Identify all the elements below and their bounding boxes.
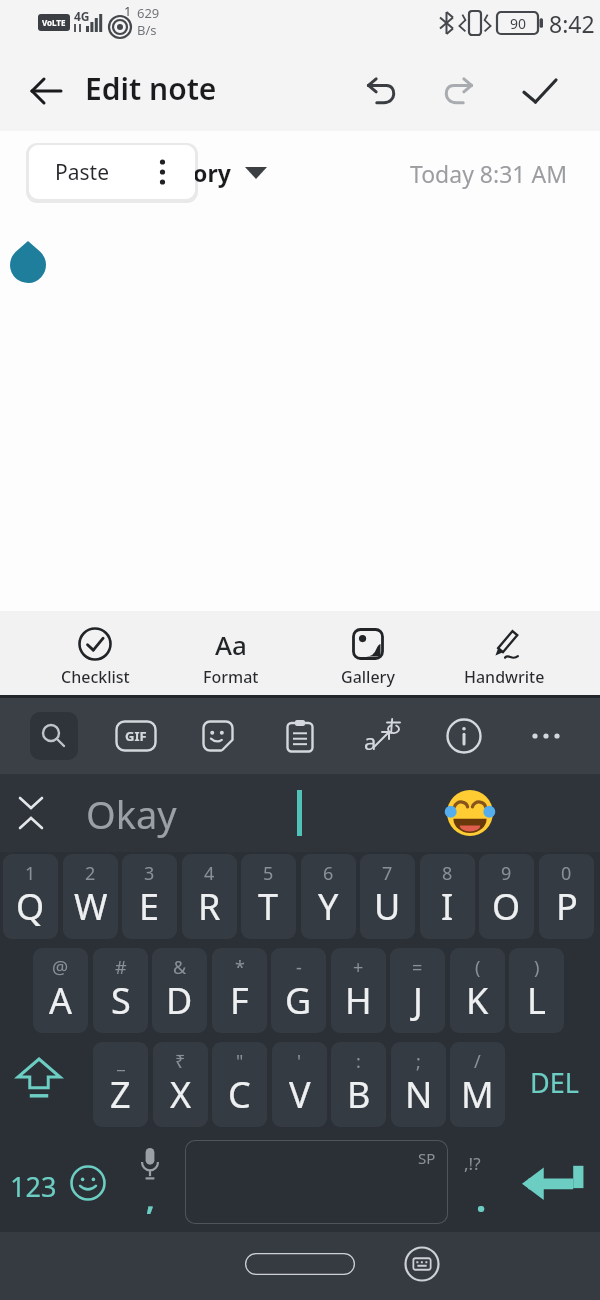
- button[interactable]: SP: [185, 1140, 448, 1224]
- button[interactable]: *: [212, 948, 267, 1033]
- button[interactable]: DEL: [530, 1064, 579, 1101]
- button[interactable]: (: [450, 948, 505, 1033]
- button[interactable]: GIF: [95, 698, 177, 774]
- staticText: P: [556, 882, 578, 931]
- staticText: N: [405, 1070, 433, 1119]
- staticText: F: [230, 976, 249, 1025]
- staticText: =: [412, 955, 423, 980]
- button[interactable]: ): [509, 948, 564, 1033]
- staticText: _: [117, 1049, 125, 1074]
- button[interactable]: -: [271, 948, 326, 1033]
- button[interactable]: 5: [241, 854, 296, 939]
- button[interactable]: [18, 1059, 60, 1099]
- button[interactable]: 123: [10, 1168, 57, 1205]
- button[interactable]: 4: [182, 854, 237, 939]
- button[interactable]: +: [331, 948, 386, 1033]
- button[interactable]: Handwrite: [436, 611, 573, 695]
- button[interactable]: _: [93, 1042, 148, 1127]
- staticText: +: [353, 955, 364, 980]
- staticText: 5: [263, 861, 274, 886]
- staticText: X: [170, 1070, 192, 1119]
- staticText: VoLTE: [42, 17, 66, 28]
- staticText: Handwrite: [464, 666, 545, 688]
- staticText: 6: [323, 861, 334, 886]
- button[interactable]: [70, 1165, 106, 1201]
- button[interactable]: &: [152, 948, 207, 1033]
- staticText: 629: [137, 4, 160, 22]
- staticText: S: [111, 976, 131, 1025]
- button[interactable]: [447, 790, 493, 836]
- staticText: 8: [442, 861, 453, 886]
- staticText: L: [527, 976, 546, 1025]
- button[interactable]: [404, 1246, 440, 1282]
- button[interactable]: Paste: [29, 145, 195, 199]
- button[interactable]: 2: [63, 854, 118, 939]
- staticText: Edit note: [85, 68, 217, 109]
- staticText: G: [285, 976, 312, 1025]
- staticText: B/s: [137, 21, 157, 39]
- staticText: a: [364, 726, 377, 756]
- button[interactable]: [18, 796, 44, 830]
- button[interactable]: [13, 698, 95, 774]
- staticText: U: [374, 882, 401, 931]
- button[interactable]: Checklist: [27, 611, 163, 695]
- button[interactable]: /: [450, 1042, 505, 1127]
- staticText: #: [115, 955, 127, 980]
- staticText: 7: [382, 861, 393, 886]
- button[interactable]: 3: [122, 854, 177, 939]
- button[interactable]: Aa: [163, 611, 299, 695]
- button[interactable]: ₹: [153, 1042, 208, 1127]
- button[interactable]: [364, 77, 396, 105]
- staticText: Y: [318, 882, 339, 931]
- button[interactable]: [423, 698, 505, 774]
- button[interactable]: [444, 77, 476, 105]
- button[interactable]: 6: [301, 854, 356, 939]
- staticText: ': [297, 1049, 302, 1074]
- staticText: R: [198, 882, 221, 931]
- button[interactable]: Okay: [86, 788, 177, 840]
- button[interactable]: [245, 1253, 355, 1275]
- button[interactable]: [177, 698, 259, 774]
- button[interactable]: #: [93, 948, 148, 1033]
- staticText: I: [441, 882, 454, 931]
- staticText: Q: [16, 882, 45, 931]
- button[interactable]: [522, 1164, 586, 1200]
- button[interactable]: [259, 698, 341, 774]
- button[interactable]: Gallery: [299, 611, 436, 695]
- button[interactable]: ': [272, 1042, 327, 1127]
- staticText: Today 8:31 AM: [410, 158, 568, 189]
- button[interactable]: 7: [360, 854, 415, 939]
- button[interactable]: ;: [391, 1042, 446, 1127]
- staticText: ,!?: [464, 1152, 481, 1175]
- button[interactable]: 0: [539, 854, 594, 939]
- staticText: ₹: [175, 1049, 186, 1074]
- button[interactable]: [32, 78, 61, 104]
- button[interactable]: @: [33, 948, 88, 1033]
- staticText: Paste: [55, 158, 109, 187]
- staticText: Aa: [215, 627, 247, 662]
- button[interactable]: 9: [479, 854, 534, 939]
- staticText: *: [235, 955, 245, 980]
- button[interactable]: :: [331, 1042, 386, 1127]
- button[interactable]: =: [390, 948, 445, 1033]
- staticText: 4G: [74, 8, 90, 24]
- button[interactable]: ": [212, 1042, 267, 1127]
- button[interactable]: [505, 698, 587, 774]
- button[interactable]: a: [341, 698, 423, 774]
- staticText: ": [236, 1049, 244, 1074]
- staticText: 3: [144, 861, 155, 886]
- staticText: (: [475, 955, 481, 980]
- staticText: GIF: [125, 727, 147, 745]
- button[interactable]: 8: [420, 854, 475, 939]
- staticText: Gallery: [341, 666, 395, 688]
- staticText: D: [166, 976, 193, 1025]
- button[interactable]: [524, 78, 556, 104]
- staticText: ,: [146, 1178, 155, 1219]
- staticText: 0: [561, 861, 572, 886]
- button[interactable]: .: [476, 1174, 487, 1223]
- staticText: ory: [193, 157, 231, 188]
- staticText: 90: [510, 14, 527, 33]
- staticText: 1: [25, 861, 36, 886]
- staticText: :: [356, 1049, 361, 1074]
- button[interactable]: 1: [3, 854, 58, 939]
